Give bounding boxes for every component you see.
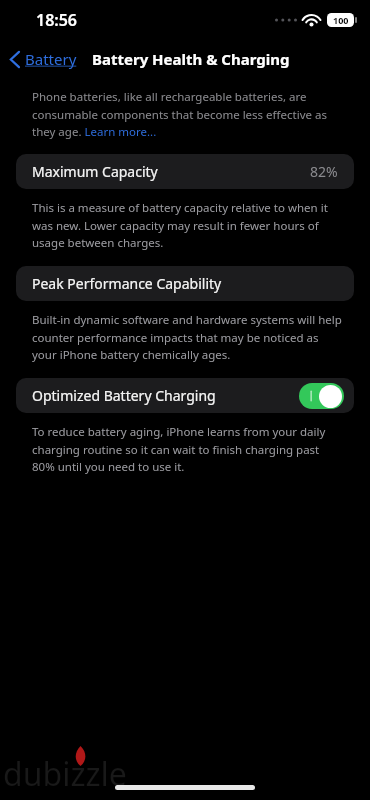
staticText: To reduce battery aging, iPhone learns f…: [32, 424, 344, 474]
button[interactable]: Maximum Capacity: [16, 154, 354, 189]
staticText: 82%: [310, 162, 338, 181]
staticText: Built-in dynamic software and hardware s…: [32, 312, 344, 362]
staticText: 100: [333, 14, 349, 26]
staticText: Phone batteries, like all rechargeable b…: [32, 89, 342, 139]
staticText: This is a measure of battery capacity re…: [32, 200, 344, 250]
staticText: Battery: [25, 49, 77, 69]
staticText: dubizzle: [3, 752, 127, 796]
staticText: Optimized Battery Charging: [32, 386, 216, 405]
staticText: 18:56: [36, 9, 78, 31]
button[interactable]: Peak Performance Capability: [16, 266, 354, 301]
button[interactable]: Battery: [0, 44, 85, 74]
staticText: Battery Health & Charging: [92, 49, 290, 69]
staticText: Peak Performance Capability: [32, 274, 222, 293]
staticText: Maximum Capacity: [32, 162, 158, 181]
button[interactable]: Optimized Battery Charging, on: [299, 383, 344, 409]
button[interactable]: Optimized Battery Charging: [16, 378, 354, 413]
